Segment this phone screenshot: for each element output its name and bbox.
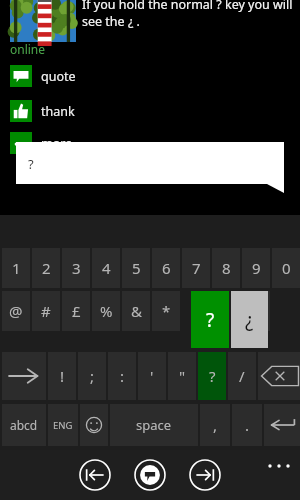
staticText: 5 <box>132 258 141 278</box>
button[interactable]: Message input <box>16 142 284 194</box>
button[interactable]: thank <box>10 99 130 123</box>
staticText: £ <box>72 301 81 321</box>
button[interactable]: ENG <box>48 404 78 446</box>
staticText: . <box>245 415 250 435</box>
staticText: more <box>41 135 73 152</box>
staticText: 8 <box>222 258 231 278</box>
staticText: space <box>136 416 172 434</box>
staticText: abcd <box>10 417 38 433</box>
staticText: 0 <box>282 258 291 278</box>
staticText: ¿ <box>245 307 254 333</box>
button[interactable]: * <box>152 291 180 331</box>
staticText: / <box>239 366 245 386</box>
button[interactable]: abcd <box>2 404 46 446</box>
staticText: ENG <box>53 419 73 432</box>
staticText: & <box>131 301 142 321</box>
button[interactable]: & <box>122 291 150 331</box>
staticText: 9 <box>252 258 261 278</box>
button[interactable]: Tab <box>2 352 46 400</box>
button[interactable]: 8 <box>212 248 240 288</box>
button[interactable]: 7 <box>182 248 210 288</box>
button[interactable]: Backspace <box>258 352 300 400</box>
staticText: quote <box>41 68 76 85</box>
staticText: , <box>213 415 218 435</box>
staticText: 3 <box>72 258 81 278</box>
button[interactable]: ! <box>48 352 76 400</box>
button[interactable]: More options <box>264 455 296 477</box>
button[interactable]: / <box>228 352 256 400</box>
button[interactable]: , <box>200 404 230 446</box>
staticText: 1 <box>12 258 21 278</box>
button[interactable]: 0 <box>272 248 300 288</box>
staticText: * <box>162 301 171 321</box>
button[interactable]: : <box>108 352 136 400</box>
staticText: 4 <box>102 258 111 278</box>
button[interactable]: ¿ <box>231 291 268 348</box>
button[interactable]: Next <box>189 459 221 491</box>
staticText: @ <box>9 301 23 321</box>
staticText: ? <box>28 155 34 173</box>
staticText: online <box>10 41 46 57</box>
staticText: ' <box>150 366 154 386</box>
button[interactable]: 1 <box>2 248 30 288</box>
staticText: # <box>41 301 51 321</box>
button[interactable]: ? <box>191 291 229 348</box>
button[interactable]: space <box>110 404 198 446</box>
button[interactable]: 4 <box>92 248 120 288</box>
button[interactable]: 6 <box>152 248 180 288</box>
button[interactable]: # <box>32 291 60 331</box>
button[interactable]: Previous <box>79 459 111 491</box>
staticText: 6 <box>162 258 171 278</box>
button[interactable]: . <box>232 404 262 446</box>
button[interactable]: \ <box>242 291 270 331</box>
button[interactable]: ; <box>78 352 106 400</box>
button[interactable]: £ <box>62 291 90 331</box>
button[interactable]: quote <box>10 64 130 88</box>
button[interactable]: 5 <box>122 248 150 288</box>
button[interactable]: 3 <box>62 248 90 288</box>
button[interactable]: Quote <box>134 459 166 491</box>
button[interactable]: ? <box>198 352 226 400</box>
button[interactable]: 2 <box>32 248 60 288</box>
staticText: thank <box>41 103 75 120</box>
button[interactable]: % <box>92 291 120 331</box>
staticText: ? <box>206 307 215 333</box>
button[interactable]: more <box>10 131 130 155</box>
button[interactable]: @ <box>2 291 30 331</box>
staticText: : <box>120 366 125 386</box>
button[interactable]: Emoji <box>80 404 108 446</box>
staticText: ; <box>90 366 95 386</box>
button[interactable]: User avatar <box>10 0 76 42</box>
staticText: If you hold the normal ? key you will se… <box>82 0 294 30</box>
staticText: 7 <box>192 258 201 278</box>
staticText: " <box>179 366 186 386</box>
button[interactable]: ' <box>138 352 166 400</box>
staticText: % <box>100 301 113 321</box>
button[interactable]: Enter <box>264 404 300 446</box>
staticText: ? <box>209 366 216 386</box>
button[interactable]: 9 <box>242 248 270 288</box>
staticText: 2 <box>42 258 51 278</box>
button[interactable]: " <box>168 352 196 400</box>
staticText: ! <box>60 366 65 386</box>
